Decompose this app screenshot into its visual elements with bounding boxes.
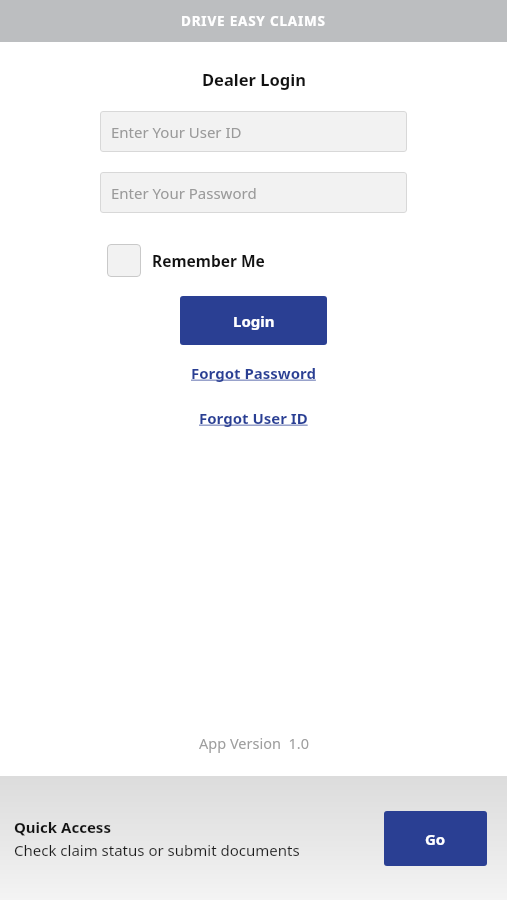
- staticText: Enter Your User ID: [111, 122, 242, 142]
- button[interactable]: Enter Your User ID: [100, 111, 407, 152]
- staticText: Dealer Login: [202, 68, 306, 90]
- staticText: Check claim status or submit documents: [14, 840, 300, 860]
- staticText: Login: [233, 311, 275, 331]
- staticText: App Version 1.0: [199, 733, 309, 753]
- button[interactable]: Login: [180, 296, 327, 345]
- staticText: Go: [425, 829, 446, 849]
- staticText: Remember Me: [152, 250, 265, 271]
- button[interactable]: Go to quick access: [384, 811, 487, 866]
- button[interactable]: Remember Me: [107, 242, 273, 279]
- staticText: DRIVE EASY CLAIMS: [181, 12, 326, 30]
- button[interactable]: Forgot User ID: [195, 404, 312, 432]
- staticText: Enter Your Password: [111, 183, 257, 203]
- button[interactable]: Forgot Password: [187, 359, 320, 387]
- button[interactable]: Enter Your Password: [100, 172, 407, 213]
- staticText: Quick Access: [14, 817, 111, 837]
